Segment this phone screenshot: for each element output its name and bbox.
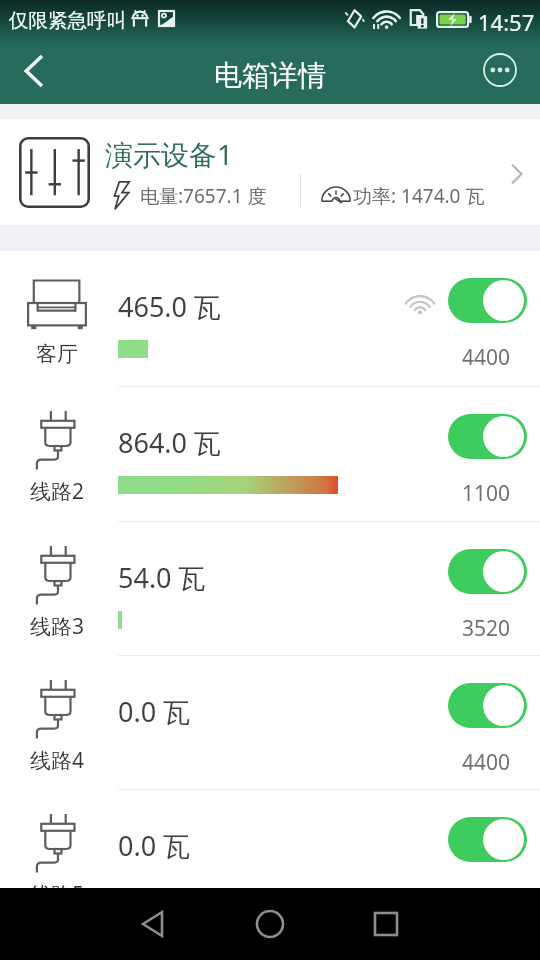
button[interactable]: 演示设备1 (0, 119, 540, 225)
staticText: 电箱详情 (214, 58, 326, 93)
staticText: 4400 (0, 748, 510, 777)
button[interactable]: Home (234, 888, 306, 960)
staticText: 54.0 瓦 (118, 559, 206, 596)
staticText: 14:57 (478, 7, 535, 37)
button[interactable]: 线路3 (0, 522, 540, 655)
button[interactable]: 线路5 (0, 790, 540, 924)
staticText: 演示设备1 (105, 135, 234, 173)
button[interactable]: Toggle 客厅 (448, 278, 527, 323)
button[interactable]: Back (118, 888, 190, 960)
staticText: 线路2 (0, 477, 114, 506)
staticText: 465.0 瓦 (118, 288, 222, 325)
staticText: 仅限紧急呼叫 (9, 8, 126, 33)
button[interactable]: 线路4 (0, 656, 540, 789)
button[interactable]: More options (483, 53, 518, 88)
button[interactable]: 线路2 (0, 387, 540, 521)
staticText: 0.0 瓦 (118, 827, 191, 864)
button[interactable]: Toggle 线路5 (448, 817, 527, 862)
button[interactable]: Toggle 线路2 (448, 414, 527, 459)
staticText: 0.0 瓦 (118, 693, 191, 730)
staticText: 线路4 (0, 746, 114, 775)
button[interactable]: Toggle 线路3 (448, 549, 527, 594)
staticText: 客厅 (0, 341, 114, 367)
staticText: 864.0 瓦 (118, 424, 222, 461)
button[interactable]: 客厅 (0, 251, 540, 386)
button[interactable]: Back (0, 46, 60, 104)
staticText: 线路3 (0, 612, 114, 641)
button[interactable]: Toggle 线路4 (448, 683, 527, 728)
button[interactable]: Recents (350, 888, 422, 960)
staticText: 电量:7657.1 度 (140, 183, 267, 209)
staticText: 1100 (0, 479, 510, 508)
staticText: 3520 (0, 614, 510, 643)
staticText: 功率: 1474.0 瓦 (353, 183, 485, 209)
staticText: 4400 (0, 343, 510, 372)
staticText: 线路5 (0, 880, 114, 909)
staticText: 4400 (0, 882, 510, 911)
